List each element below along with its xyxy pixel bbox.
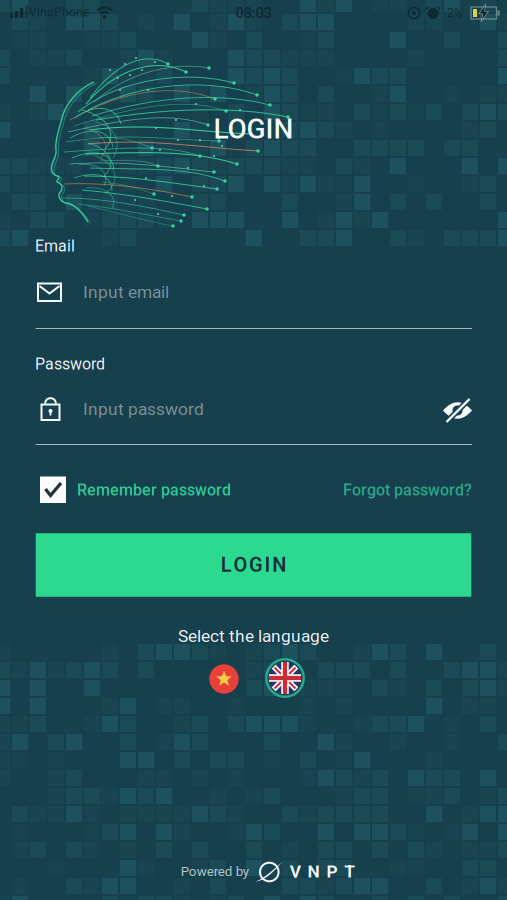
button[interactable]: English [265, 658, 305, 698]
staticText: L [221, 554, 232, 576]
staticText: 2% [447, 6, 463, 20]
staticText: G [249, 554, 263, 576]
staticText: Powered by [181, 864, 249, 879]
staticText: N [308, 862, 320, 881]
button[interactable]: Tiếng Việt [209, 664, 239, 694]
staticText: LOGIN [213, 113, 293, 145]
button[interactable]: Input email [0, 269, 507, 315]
staticText: Email [35, 237, 75, 255]
button[interactable]: Input password [0, 385, 430, 433]
staticText: Input password [83, 399, 204, 419]
staticText: T [344, 862, 355, 881]
staticText: N [272, 554, 286, 576]
staticText: Input email [83, 282, 169, 302]
staticText: Remember password [77, 481, 231, 499]
button[interactable]: Remember password [40, 476, 231, 503]
button[interactable]: L [36, 533, 471, 597]
staticText: I [265, 554, 271, 576]
button[interactable]: Forgot password? [343, 481, 472, 499]
staticText: Select the language [178, 626, 329, 646]
staticText: Forgot password? [343, 481, 472, 499]
staticText: VinaPhone [29, 6, 89, 19]
staticText: O [233, 554, 247, 576]
button[interactable]: Show password [441, 395, 475, 425]
staticText: Password [35, 355, 105, 373]
staticText: 08:03 [235, 5, 271, 21]
staticText: P [326, 862, 337, 881]
staticText: V [290, 862, 301, 881]
